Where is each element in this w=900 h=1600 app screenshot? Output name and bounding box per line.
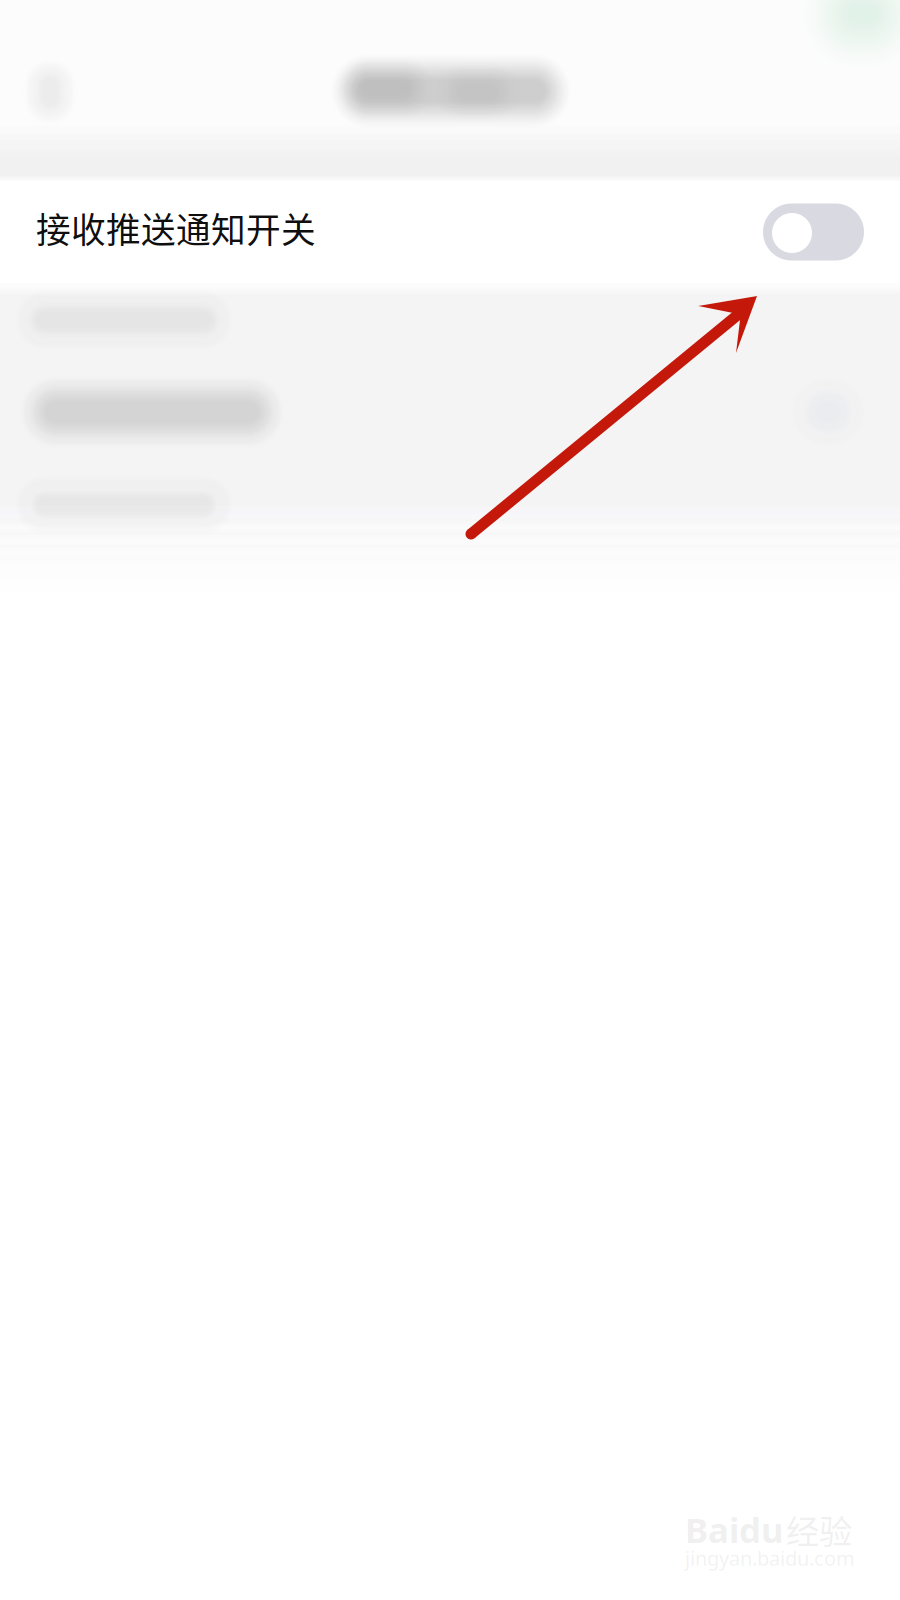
button[interactable]: 接收推送通知开关: [763, 203, 864, 260]
staticText: 经验: [786, 1505, 852, 1554]
button[interactable]: 接收推送通知开关: [38, 207, 318, 257]
staticText: Baidu: [685, 1506, 784, 1552]
staticText: 接收推送通知开关: [36, 203, 316, 253]
button[interactable]: 返回: [21, 57, 79, 127]
staticText: jingyan.baidu.com: [685, 1545, 855, 1571]
